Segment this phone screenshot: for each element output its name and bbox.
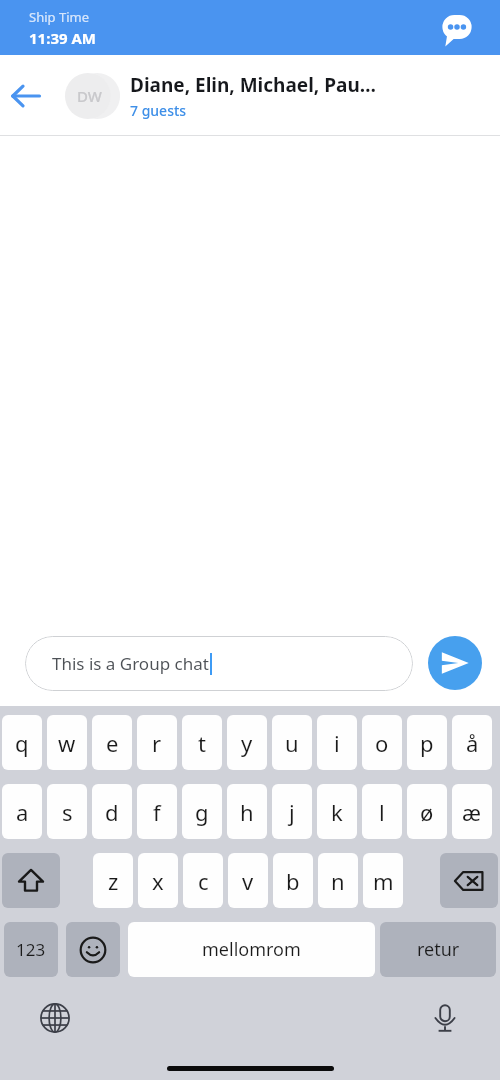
staticText: This is a Group chat xyxy=(52,652,209,675)
button[interactable]: ø xyxy=(407,784,447,839)
staticText: retur xyxy=(417,937,460,962)
staticText: z xyxy=(108,866,119,896)
staticText: ø xyxy=(420,797,434,827)
button[interactable]: d xyxy=(92,784,132,839)
button[interactable]: q xyxy=(2,715,42,770)
staticText: k xyxy=(331,797,343,827)
button[interactable]: s xyxy=(47,784,87,839)
staticText: i xyxy=(334,728,340,758)
staticText: a xyxy=(16,797,29,827)
staticText: e xyxy=(106,728,119,758)
staticText: p xyxy=(420,728,434,758)
staticText: s xyxy=(62,797,73,827)
staticText: u xyxy=(285,728,299,758)
button[interactable]: This is a Group chat xyxy=(25,636,413,691)
staticText: g xyxy=(195,797,209,827)
staticText: t xyxy=(198,728,206,758)
staticText: y xyxy=(241,728,253,758)
staticText: x xyxy=(152,866,164,896)
staticText: c xyxy=(198,866,209,896)
button[interactable]: å xyxy=(452,715,492,770)
button[interactable]: retur xyxy=(380,922,496,977)
staticText: Diane, Elin, Michael, Pau… xyxy=(130,72,376,98)
staticText: m xyxy=(373,866,394,896)
staticText: f xyxy=(153,797,161,827)
button[interactable]: m xyxy=(363,853,403,908)
button[interactable]: e xyxy=(92,715,132,770)
button[interactable]: Send xyxy=(428,636,482,690)
button[interactable]: l xyxy=(362,784,402,839)
button[interactable]: r xyxy=(137,715,177,770)
button[interactable]: n xyxy=(318,853,358,908)
button[interactable]: j xyxy=(272,784,312,839)
staticText: DW xyxy=(77,86,102,106)
staticText: 123 xyxy=(16,938,46,961)
staticText: r xyxy=(152,728,162,758)
button[interactable]: Dictate xyxy=(421,994,469,1042)
button[interactable]: Backspace xyxy=(440,853,498,908)
staticText: l xyxy=(379,797,385,827)
staticText: w xyxy=(58,728,76,758)
staticText: j xyxy=(289,797,295,827)
button[interactable]: g xyxy=(182,784,222,839)
staticText: d xyxy=(105,797,119,827)
staticText: 11:39 AM xyxy=(29,28,96,48)
button[interactable]: Change keyboard xyxy=(31,994,79,1042)
button[interactable]: a xyxy=(2,784,42,839)
button[interactable]: u xyxy=(272,715,312,770)
button[interactable]: Shift xyxy=(2,853,60,908)
staticText: Ship Time xyxy=(29,8,89,26)
button[interactable]: Messages xyxy=(436,7,478,49)
button[interactable]: w xyxy=(47,715,87,770)
staticText: n xyxy=(331,866,345,896)
button[interactable]: i xyxy=(317,715,357,770)
staticText: b xyxy=(286,866,300,896)
button[interactable]: c xyxy=(183,853,223,908)
staticText: o xyxy=(375,728,389,758)
button[interactable]: b xyxy=(273,853,313,908)
button[interactable]: p xyxy=(407,715,447,770)
button[interactable]: t xyxy=(182,715,222,770)
button[interactable]: mellomrom xyxy=(128,922,375,977)
staticText: v xyxy=(242,866,254,896)
staticText: æ xyxy=(462,797,482,827)
button[interactable]: v xyxy=(228,853,268,908)
button[interactable]: Back xyxy=(0,70,52,122)
staticText: q xyxy=(15,728,29,758)
staticText: 7 guests xyxy=(130,101,187,120)
button[interactable]: o xyxy=(362,715,402,770)
button[interactable]: æ xyxy=(452,784,492,839)
button[interactable]: y xyxy=(227,715,267,770)
staticText: h xyxy=(240,797,254,827)
button[interactable]: h xyxy=(227,784,267,839)
button[interactable]: 123 xyxy=(4,922,58,977)
button[interactable]: k xyxy=(317,784,357,839)
button[interactable]: f xyxy=(137,784,177,839)
button[interactable]: x xyxy=(138,853,178,908)
button[interactable]: Emoji xyxy=(66,922,120,977)
staticText: mellomrom xyxy=(202,937,301,962)
button[interactable]: z xyxy=(93,853,133,908)
staticText: å xyxy=(466,728,479,758)
